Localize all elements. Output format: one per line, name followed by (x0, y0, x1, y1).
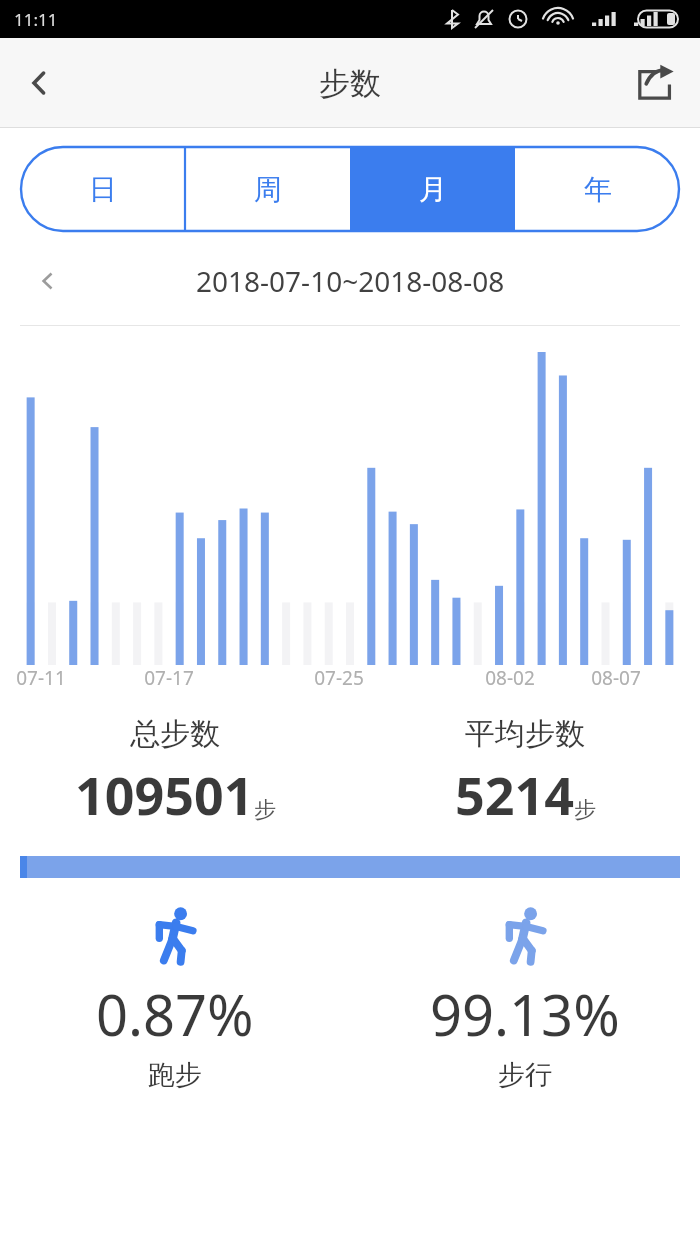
staticText: 步行 (498, 1058, 552, 1092)
button[interactable]: 月 (350, 146, 515, 232)
staticText: 08-02 (480, 665, 540, 691)
staticText: 跑步 (148, 1058, 202, 1092)
staticText: 07-25 (309, 665, 369, 691)
staticText: 步 (574, 796, 596, 824)
staticText: 07-11 (11, 665, 71, 691)
button[interactable]: Previous period (26, 259, 70, 303)
button[interactable]: Back (10, 53, 70, 113)
staticText: 109501 (75, 759, 254, 830)
staticText: 步数 (319, 64, 381, 103)
button[interactable]: Share (624, 52, 686, 114)
staticText: 平均步数 (465, 715, 585, 753)
staticText: 07-17 (139, 665, 199, 691)
staticText: 11:11 (14, 8, 58, 31)
staticText: 5214 (455, 759, 574, 830)
button[interactable]: 日 (20, 146, 185, 232)
staticText: 日 (89, 172, 117, 207)
button[interactable]: 年 (515, 146, 680, 232)
staticText: 年 (584, 172, 612, 207)
button[interactable]: 周 (185, 146, 350, 232)
staticText: 周 (254, 172, 282, 207)
staticText: 步 (254, 796, 276, 824)
staticText: 总步数 (130, 715, 220, 753)
staticText: 0.87% (96, 976, 254, 1052)
staticText: 08-07 (586, 665, 646, 691)
staticText: 月 (419, 172, 447, 207)
staticText: 99.13% (430, 976, 620, 1052)
staticText: 2018-07-10~2018-08-08 (196, 262, 505, 300)
